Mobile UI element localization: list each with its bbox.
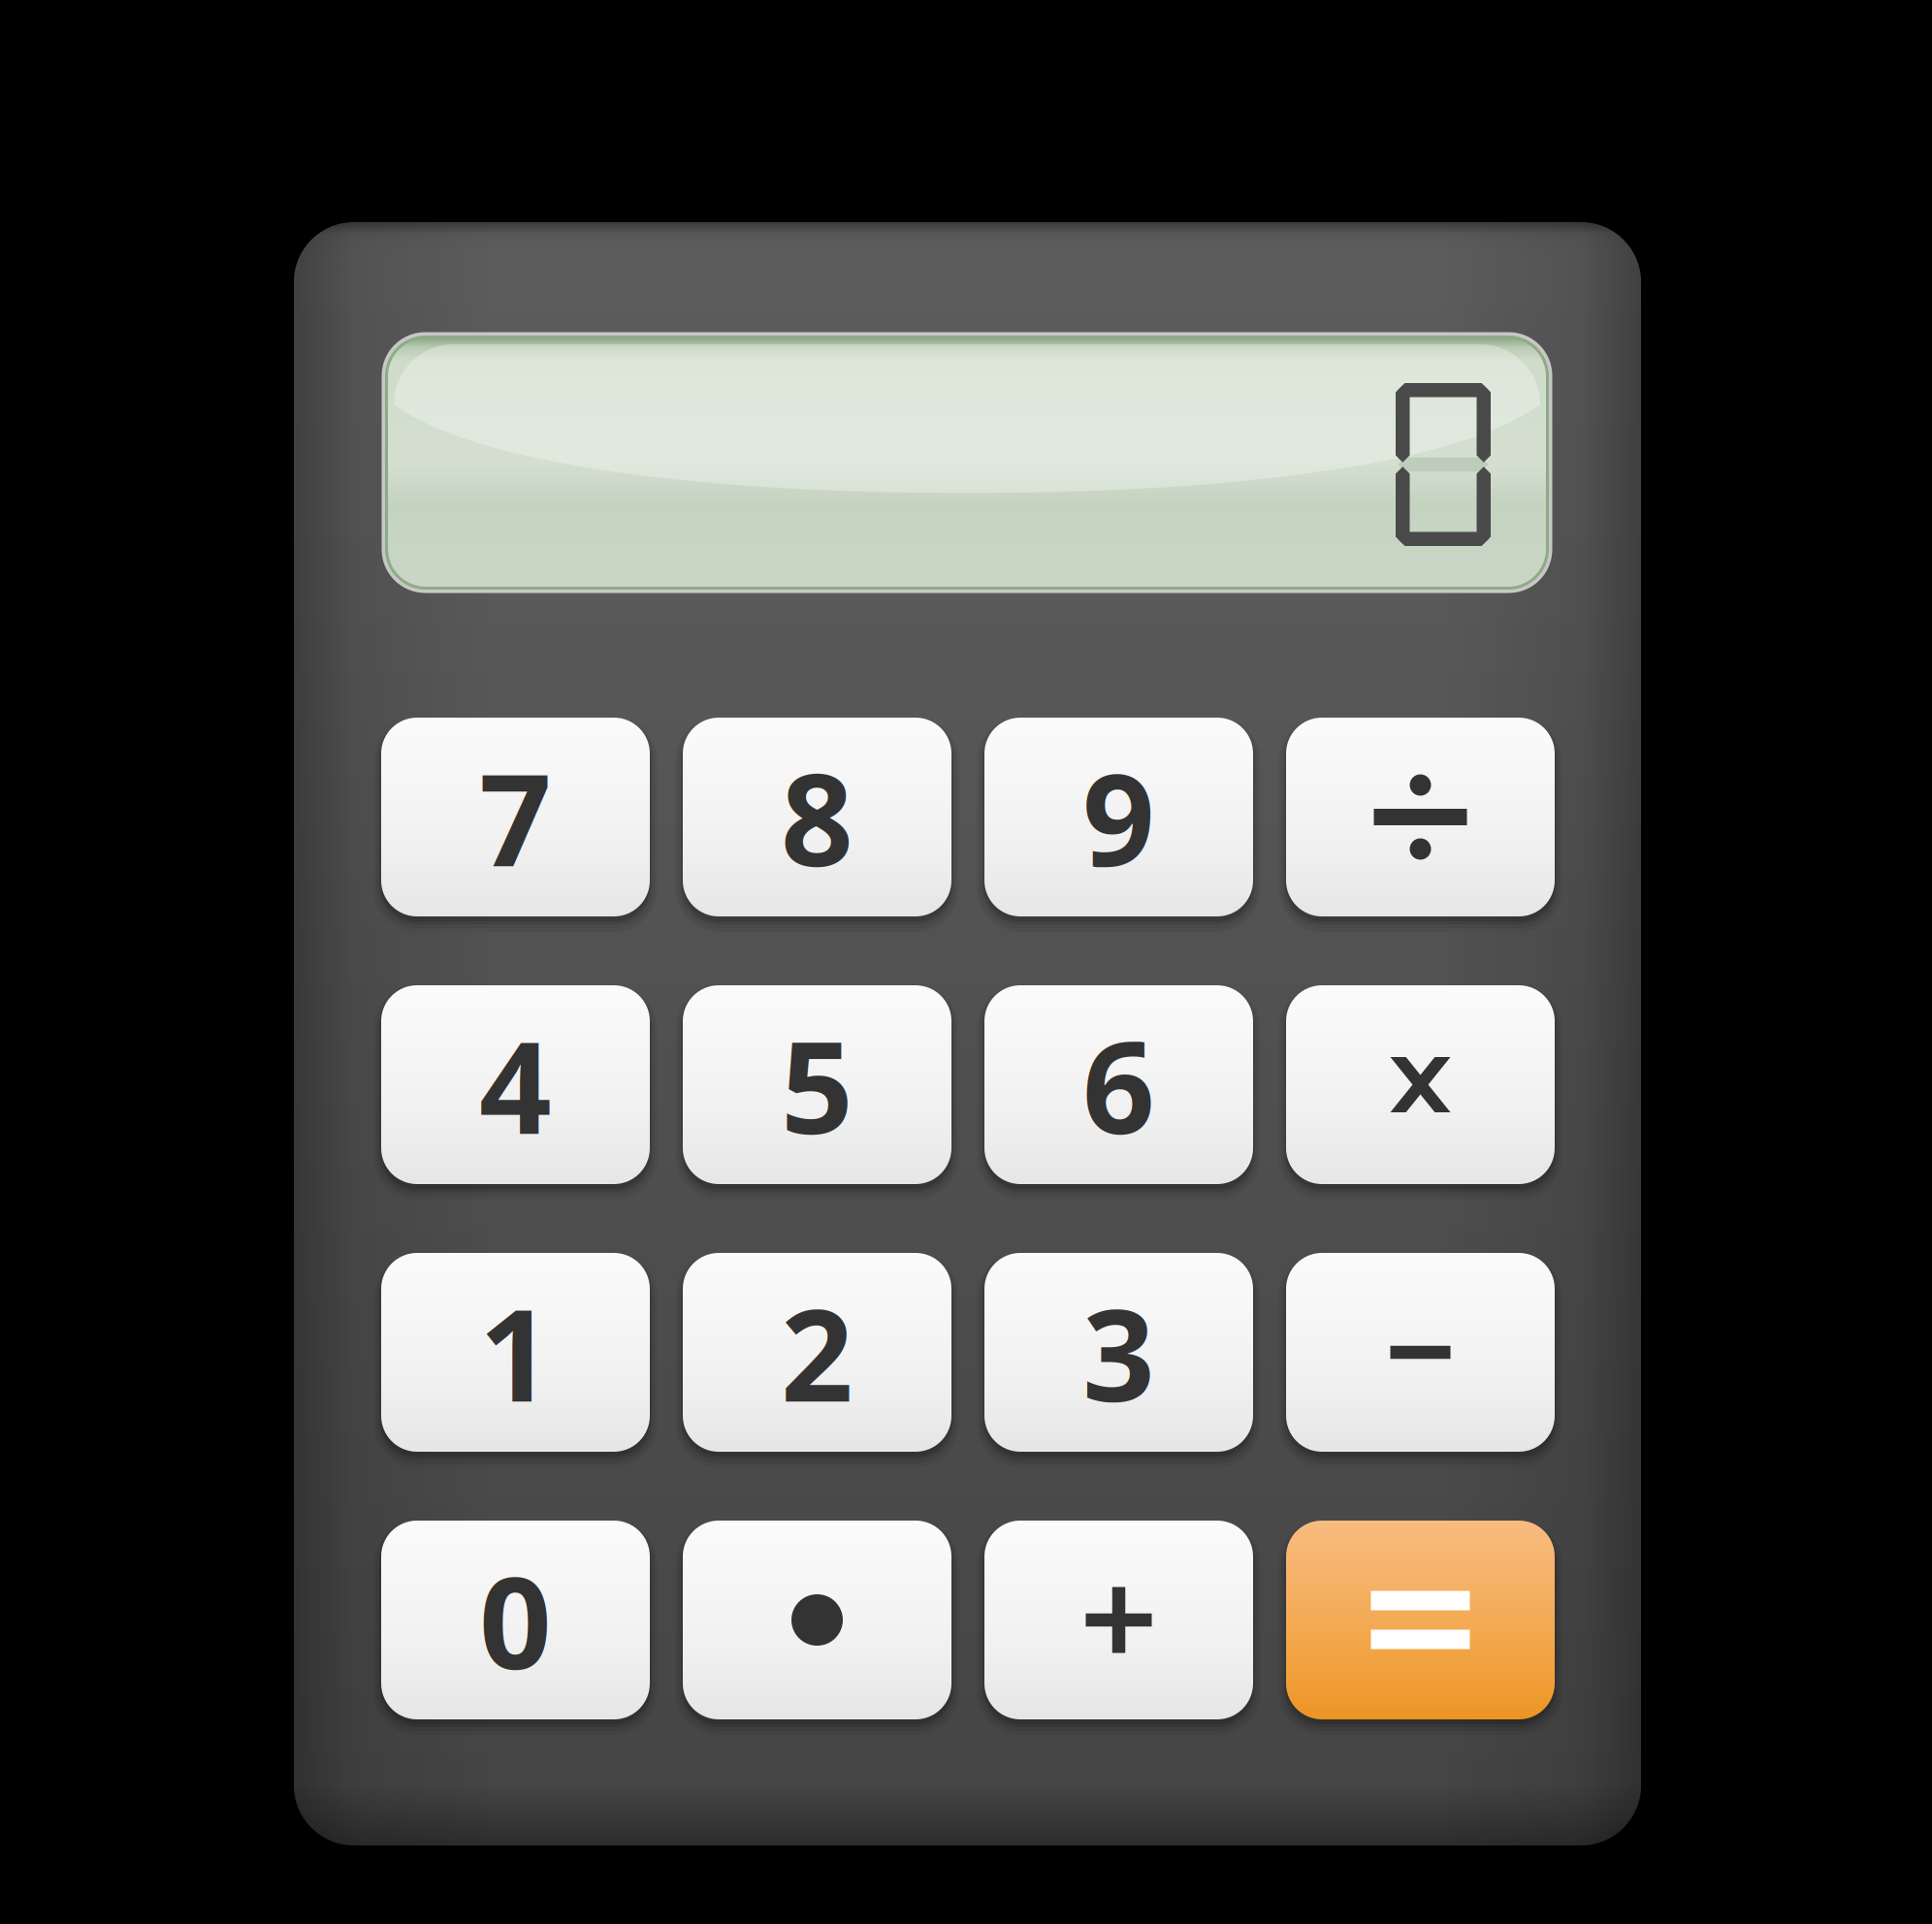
button[interactable]: Divide (1286, 718, 1555, 916)
button[interactable]: 1 (381, 1253, 650, 1452)
staticText: 6 (1082, 1000, 1155, 1169)
button[interactable]: 5 (683, 985, 951, 1184)
button[interactable]: Plus (984, 1521, 1253, 1719)
button[interactable]: 2 (683, 1253, 951, 1452)
button[interactable]: 4 (381, 985, 650, 1184)
staticText: 1 (479, 1268, 552, 1436)
button[interactable]: Multiply (1286, 985, 1555, 1184)
staticText: 2 (781, 1268, 853, 1436)
button[interactable]: Decimal point (683, 1521, 951, 1719)
staticText: 0 (479, 1536, 552, 1704)
button[interactable]: Minus (1286, 1253, 1555, 1452)
button[interactable]: 8 (683, 718, 951, 916)
button[interactable]: 7 (381, 718, 650, 916)
staticText: 9 (1082, 733, 1155, 901)
staticText: 8 (781, 733, 853, 901)
button[interactable]: Equals (1286, 1521, 1555, 1719)
staticText: 5 (781, 1000, 853, 1169)
staticText: 3 (1082, 1268, 1155, 1436)
button[interactable]: 9 (984, 718, 1253, 916)
staticText: 7 (479, 733, 552, 901)
staticText: 4 (479, 1000, 552, 1169)
button[interactable]: 0 (381, 1521, 650, 1719)
button[interactable]: 6 (984, 985, 1253, 1184)
button[interactable]: 3 (984, 1253, 1253, 1452)
